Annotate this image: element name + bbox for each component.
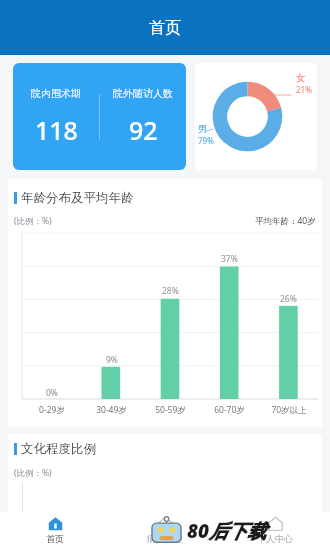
staticText: 26% [280,293,297,305]
button[interactable]: 女 [195,63,317,170]
staticText: 30-49岁 [96,404,127,416]
staticText: 文化程度比例 [21,441,96,457]
staticText: 0-29岁 [39,404,65,416]
button[interactable]: 院内围术期 [13,63,186,170]
button[interactable]: 病人管理 [110,512,220,550]
staticText: 70岁以上 [271,404,307,416]
staticText: 病人管理 [147,533,183,544]
staticText: 院内围术期 [31,87,81,100]
button[interactable]: 个人中心 [220,512,330,550]
staticText: 92 [129,113,158,147]
staticText: 男 [198,123,208,135]
staticText: 9% [106,354,118,366]
staticText: 80后下载 [187,518,267,544]
staticText: 首页 [149,18,181,38]
staticText: 79% [198,135,214,146]
staticText: 0% [46,387,58,399]
staticText: (比例：%) [14,467,52,479]
staticText: 37% [221,253,238,265]
staticText: 28% [162,285,179,297]
staticText: 年龄分布及平均年龄 [21,190,134,206]
staticText: 平均年龄：40岁 [255,215,316,227]
staticText: 女 [296,72,306,84]
staticText: 118 [35,113,78,147]
staticText: (比例：%) [14,215,52,227]
staticText: 60-70岁 [214,404,245,416]
staticText: 21% [296,84,312,95]
button[interactable]: 首页 [0,512,110,550]
staticText: 院外随访人数 [113,87,173,100]
staticText: 50-59岁 [155,404,186,416]
staticText: 首页 [46,533,64,544]
staticText: 个人中心 [257,533,293,544]
